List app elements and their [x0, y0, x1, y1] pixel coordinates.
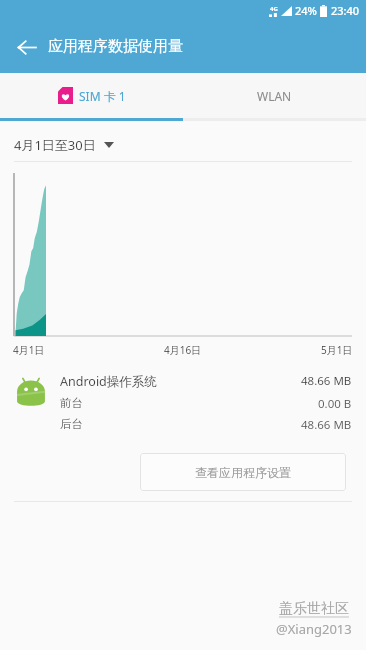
- staticText: 24%: [295, 3, 317, 18]
- staticText: SIM 卡 1: [79, 88, 126, 104]
- staticText: 4月1日至30日: [14, 136, 96, 154]
- button[interactable]: Back: [8, 29, 44, 65]
- staticText: 盖乐世社区: [279, 600, 349, 618]
- staticText: 4月16日: [164, 343, 202, 357]
- staticText: 48.66 MB: [301, 373, 352, 389]
- staticText: 前台: [60, 396, 318, 410]
- staticText: 0.00 B: [318, 396, 352, 412]
- staticText: 5月1日: [321, 343, 353, 357]
- staticText: 查看应用程序设置: [195, 465, 291, 480]
- button[interactable]: SIM 卡 1: [0, 73, 183, 118]
- staticText: 23:40: [331, 3, 360, 18]
- staticText: Android操作系统: [60, 373, 301, 390]
- staticText: @Xiang2013: [276, 620, 352, 638]
- staticText: 应用程序数据使用量: [48, 37, 183, 56]
- button[interactable]: 4月1日至30日: [0, 128, 366, 161]
- staticText: 4月1日: [13, 343, 45, 357]
- button[interactable]: WLAN: [183, 73, 366, 118]
- staticText: 48.66 MB: [301, 417, 352, 433]
- staticText: 4G: [270, 5, 278, 13]
- button[interactable]: 查看应用程序设置: [140, 453, 346, 491]
- button[interactable]: Android操作系统: [0, 373, 366, 433]
- staticText: 后台: [60, 417, 301, 431]
- staticText: WLAN: [257, 88, 292, 104]
